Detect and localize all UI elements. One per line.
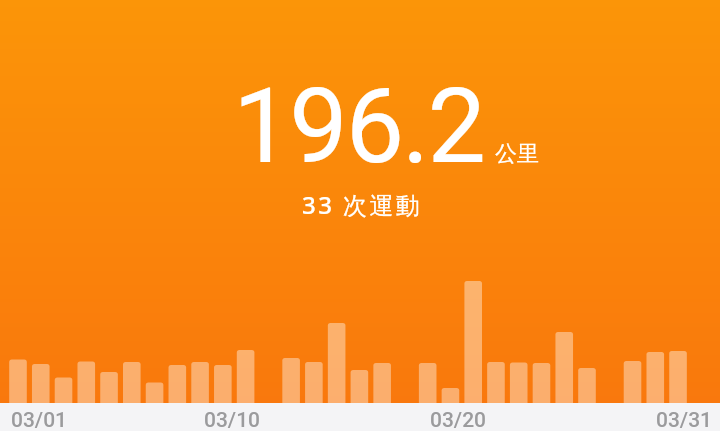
staticText: 33 次運動 — [302, 188, 423, 221]
button[interactable]: 196.2 — [0, 0, 720, 431]
staticText: 03/31 — [656, 408, 713, 431]
staticText: 公里 — [495, 140, 539, 168]
staticText: 03/01 — [11, 408, 68, 431]
staticText: 03/20 — [430, 408, 487, 431]
staticText: 03/10 — [204, 408, 261, 431]
staticText: 196.2 — [233, 66, 484, 188]
